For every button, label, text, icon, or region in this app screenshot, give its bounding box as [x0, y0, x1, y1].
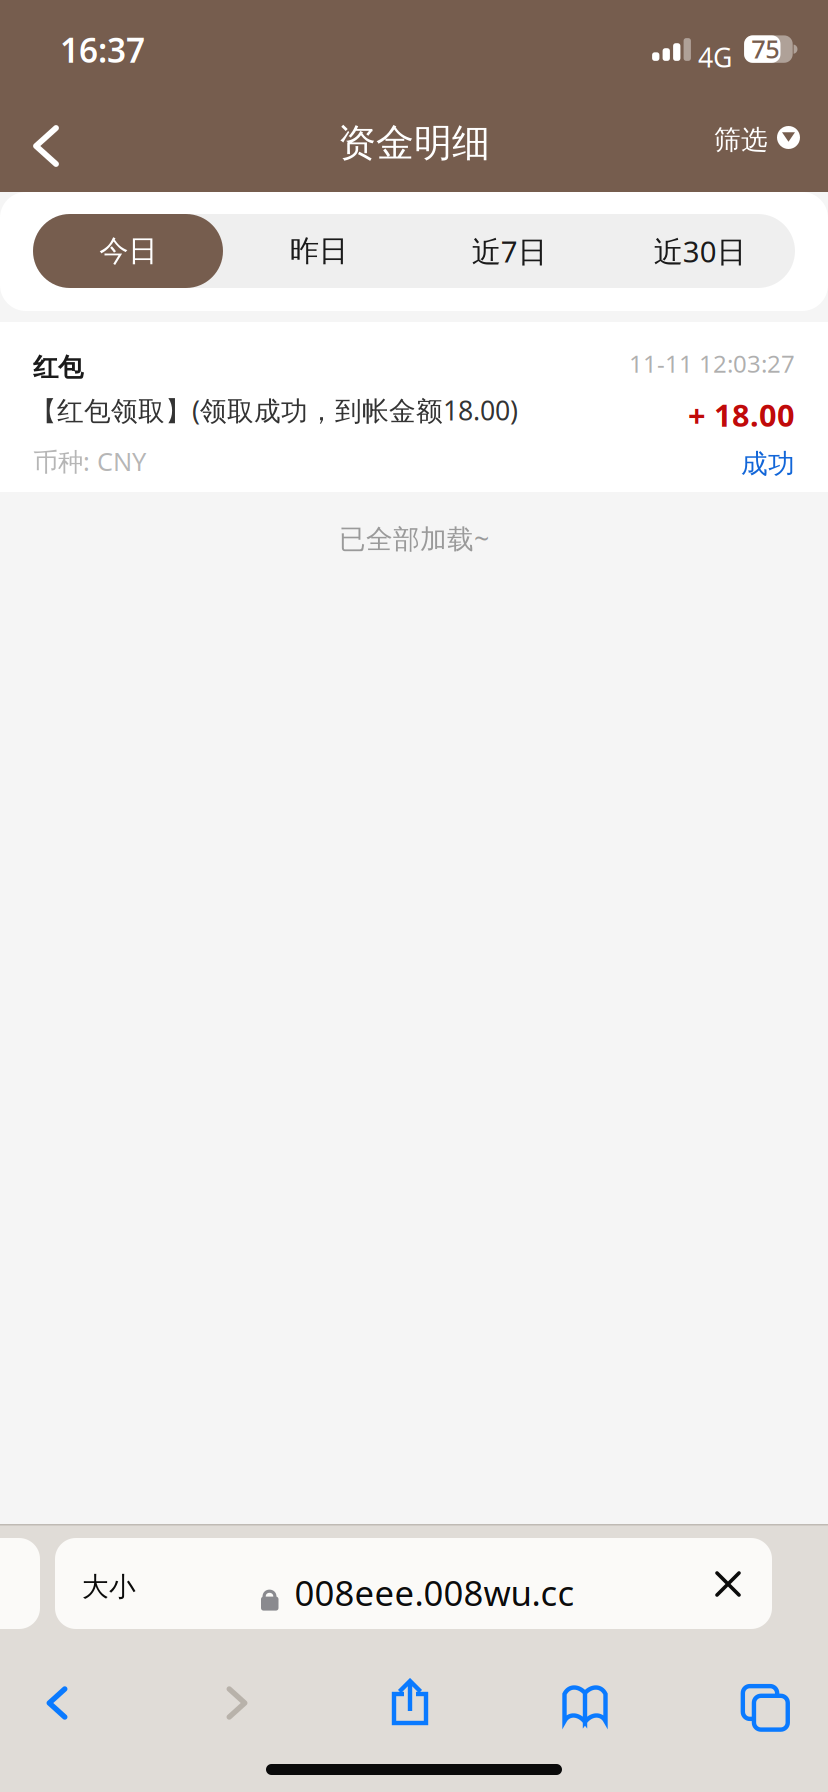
button[interactable]: 近30日: [604, 214, 795, 288]
staticText: 大小: [82, 1570, 136, 1604]
staticText: 币种: CNY: [33, 444, 146, 478]
button[interactable]: 筛选: [712, 94, 828, 192]
button[interactable]: 返回: [0, 97, 92, 195]
staticText: 筛选: [714, 123, 768, 157]
button[interactable]: 分享: [345, 1654, 475, 1750]
staticText: 近7日: [472, 231, 547, 271]
button[interactable]: 今日: [33, 214, 223, 288]
staticText: 16:37: [60, 27, 145, 72]
staticText: 已全部加载~: [339, 520, 489, 556]
button[interactable]: 大小: [55, 1538, 772, 1629]
staticText: 今日: [99, 232, 157, 269]
staticText: 资金明细: [338, 119, 490, 167]
staticText: 4G: [698, 39, 732, 75]
staticText: 近30日: [654, 231, 746, 271]
staticText: + 18.00: [688, 394, 795, 436]
button[interactable]: 近7日: [414, 214, 604, 288]
staticText: 成功: [741, 447, 795, 481]
staticText: 【红包领取】(领取成功，到帐金额18.00): [30, 392, 518, 428]
staticText: 昨日: [290, 232, 348, 269]
button[interactable]: 标签页: [695, 1655, 825, 1751]
button[interactable]: 下一页: [172, 1655, 302, 1751]
button[interactable]: 上一页: [0, 1655, 122, 1751]
staticText: 11-11 12:03:27: [629, 347, 795, 380]
staticText: 红包: [33, 351, 83, 383]
button[interactable]: 书签: [520, 1656, 650, 1752]
staticText: 75: [751, 31, 779, 66]
button[interactable]: 红包: [0, 322, 828, 492]
staticText: 008eee.008wu.cc: [294, 1569, 574, 1616]
button[interactable]: 昨日: [223, 214, 414, 288]
